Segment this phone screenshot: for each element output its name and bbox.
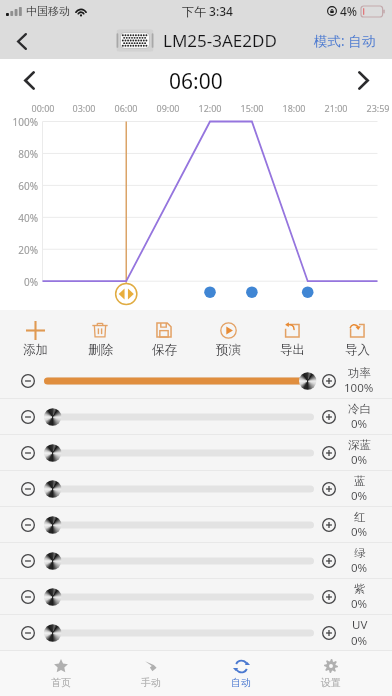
staticText: UV — [352, 617, 368, 633]
staticText: 0% — [351, 416, 368, 432]
button[interactable]: 保存 — [135, 313, 193, 360]
staticText: 删除 — [88, 342, 113, 358]
staticText: 紫 — [354, 582, 366, 596]
staticText: 03:00 — [64, 102, 104, 114]
staticText: 4% — [340, 3, 358, 19]
staticText: 12:00 — [190, 102, 230, 114]
button[interactable]: Increase 红 — [315, 511, 343, 539]
staticText: 60% — [0, 179, 38, 193]
staticText: 导出 — [280, 342, 305, 358]
staticText: 09:00 — [148, 102, 188, 114]
button[interactable]: 删除 — [71, 313, 129, 360]
button[interactable]: Decrease 功率 — [14, 367, 42, 395]
staticText: 00:00 — [23, 102, 63, 114]
staticText: 0% — [351, 452, 368, 468]
staticText: 20% — [0, 243, 38, 257]
staticText: 18:00 — [274, 102, 314, 114]
button[interactable]: Next — [345, 62, 381, 98]
button[interactable]: Increase UV — [315, 619, 343, 647]
button[interactable]: 自动 — [196, 650, 286, 696]
staticText: 15:00 — [232, 102, 272, 114]
button[interactable]: Decrease 紫 — [14, 583, 42, 611]
button[interactable]: 设置 — [286, 650, 376, 696]
button[interactable]: Previous — [11, 62, 47, 98]
staticText: 模式: 自动 — [314, 32, 376, 50]
staticText: 0% — [351, 524, 368, 540]
staticText: 06:00 — [106, 102, 146, 114]
staticText: 首页 — [51, 676, 71, 689]
staticText: 设置 — [321, 676, 341, 689]
button[interactable]: Increase 蓝 — [315, 475, 343, 503]
staticText: 23:59 — [358, 102, 392, 114]
button[interactable]: Decrease 深蓝 — [14, 439, 42, 467]
button[interactable]: 添加 — [6, 313, 64, 360]
button[interactable]: Increase 紫 — [315, 583, 343, 611]
staticText: 21:00 — [316, 102, 356, 114]
staticText: 蓝 — [354, 474, 366, 488]
button[interactable]: Increase 深蓝 — [315, 439, 343, 467]
staticText: LM25-3AE2DD — [163, 29, 277, 52]
button[interactable]: Decrease 红 — [14, 511, 42, 539]
staticText: 深蓝 — [348, 438, 371, 452]
staticText: 06:00 — [169, 67, 223, 96]
staticText: 40% — [0, 211, 38, 225]
button[interactable]: Increase 功率 — [315, 367, 343, 395]
staticText: 0% — [351, 488, 368, 504]
button[interactable]: Decrease UV — [14, 619, 42, 647]
staticText: 功率 — [348, 366, 371, 380]
staticText: 100% — [344, 380, 374, 396]
button[interactable]: Increase 绿 — [315, 547, 343, 575]
button[interactable]: 导入 — [328, 313, 386, 360]
staticText: 中国移动 — [26, 4, 70, 18]
staticText: 0% — [351, 596, 368, 612]
button[interactable]: Decrease 冷白 — [14, 403, 42, 431]
staticText: 下午 3:34 — [182, 3, 233, 19]
button[interactable]: 模式: 自动 — [314, 32, 376, 50]
staticText: 导入 — [345, 342, 370, 358]
staticText: 手动 — [141, 676, 161, 689]
staticText: 保存 — [152, 342, 177, 358]
staticText: 绿 — [354, 546, 366, 560]
button[interactable]: 预演 — [199, 313, 257, 360]
button[interactable]: 手动 — [106, 650, 196, 696]
staticText: 红 — [354, 510, 366, 524]
button[interactable]: Decrease 绿 — [14, 547, 42, 575]
staticText: 自动 — [231, 676, 251, 689]
button[interactable]: Decrease 蓝 — [14, 475, 42, 503]
button[interactable]: Back — [5, 24, 39, 58]
button[interactable]: 导出 — [263, 313, 321, 360]
staticText: 0% — [0, 275, 38, 289]
staticText: 0% — [351, 633, 368, 649]
staticText: 冷白 — [348, 402, 371, 416]
staticText: 100% — [0, 115, 38, 129]
staticText: 预演 — [216, 342, 241, 358]
button[interactable]: 首页 — [16, 650, 106, 696]
staticText: 添加 — [23, 342, 48, 358]
staticText: 80% — [0, 147, 38, 161]
button[interactable]: Increase 冷白 — [315, 403, 343, 431]
staticText: 0% — [351, 560, 368, 576]
